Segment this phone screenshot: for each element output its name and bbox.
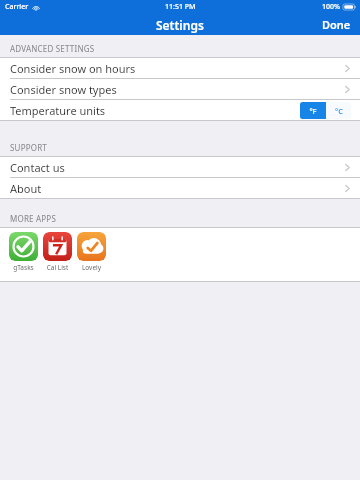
staticText: Cal List <box>43 263 72 272</box>
staticText: 100% <box>322 2 340 12</box>
staticText: ADVANCED SETTINGS <box>10 43 95 54</box>
button[interactable]: Cal List <box>43 232 72 272</box>
staticText: Temperature units <box>10 103 300 118</box>
button[interactable]: Consider snow types <box>0 79 360 99</box>
staticText: Consider snow on hours <box>10 61 345 76</box>
button[interactable]: Lovely <box>77 232 106 272</box>
staticText: gTasks <box>9 263 38 272</box>
button[interactable]: Contact us <box>0 157 360 177</box>
staticText: Lovely <box>77 263 106 272</box>
button[interactable]: Consider snow on hours <box>0 58 360 78</box>
staticText: °C <box>335 106 343 116</box>
staticText: °F <box>309 106 317 116</box>
button[interactable]: Done <box>313 14 360 35</box>
button[interactable]: gTasks <box>9 232 38 272</box>
staticText: Settings <box>156 17 204 33</box>
button[interactable]: °C <box>326 102 351 119</box>
button[interactable]: °F <box>300 102 325 119</box>
staticText: Carrier <box>5 2 29 12</box>
staticText: Contact us <box>10 160 345 175</box>
staticText: Consider snow types <box>10 82 345 97</box>
staticText: SUPPORT <box>10 142 47 153</box>
button[interactable]: About <box>0 178 360 198</box>
staticText: Done <box>322 17 351 32</box>
staticText: MORE APPS <box>10 213 56 224</box>
staticText: 11:51 PM <box>165 2 196 12</box>
staticText: About <box>10 181 345 196</box>
